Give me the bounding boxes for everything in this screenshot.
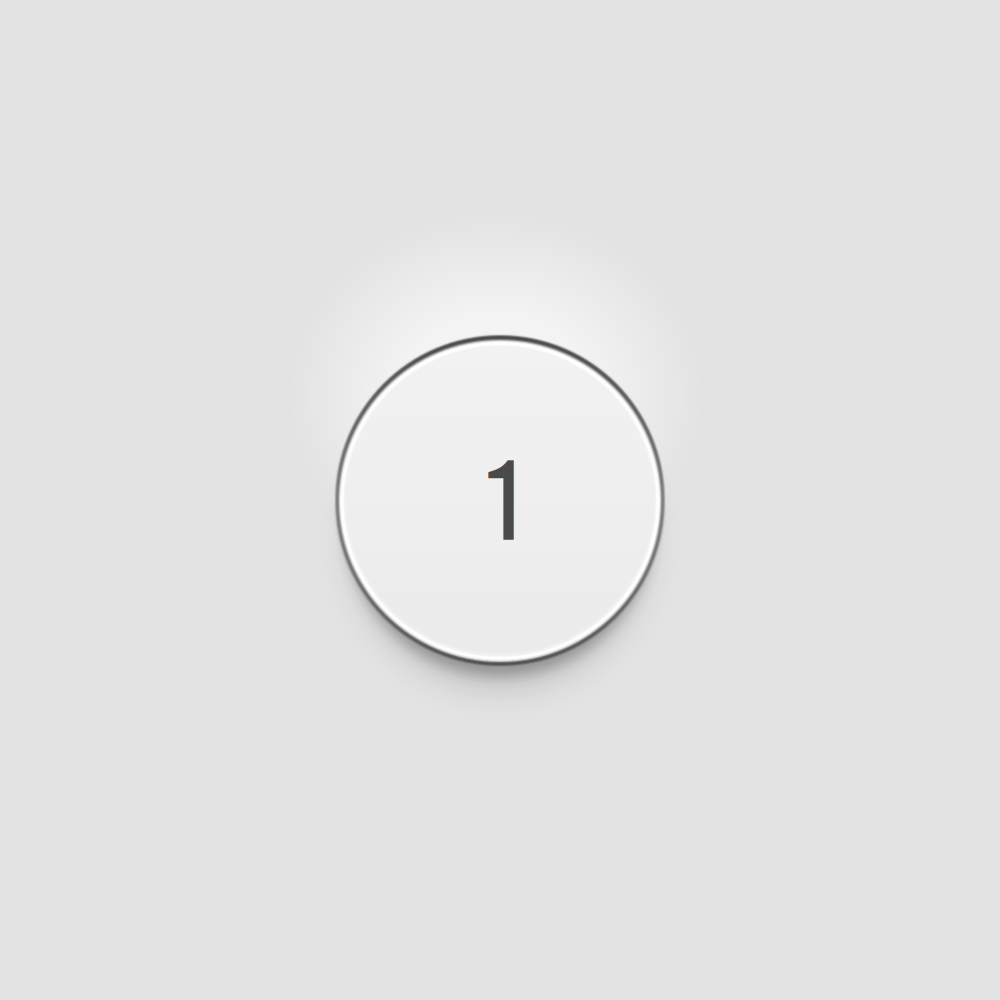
button[interactable]: 1	[332, 332, 668, 668]
staticText: 1	[484, 432, 526, 568]
